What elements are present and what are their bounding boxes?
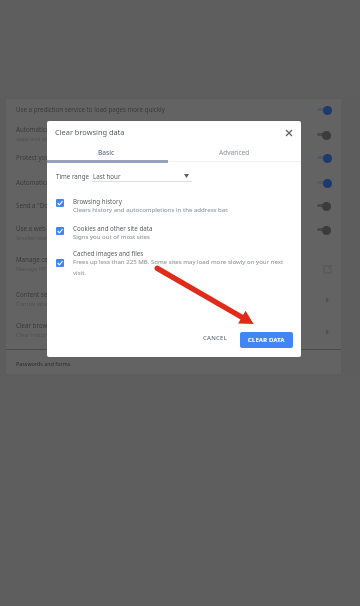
button[interactable]: CANCEL [199,329,231,347]
staticText: Automatically send some system informati… [16,125,208,133]
staticText: Basic [98,148,115,157]
staticText: Advanced [219,148,250,157]
staticText: Last hour [93,172,121,180]
staticText: Manage HTTPS/SSL certificates and settin… [16,265,131,273]
staticText: Send a "Do Not Track" request with your … [16,201,180,209]
staticText: Frees up less than 225 MB. Some sites ma… [73,257,284,265]
staticText: Content settings [16,290,64,298]
staticText: Use a web service to help resolve naviga… [16,224,164,232]
button[interactable]: Basic [47,143,174,161]
button[interactable]: Close dialog [281,125,297,141]
button[interactable]: Open certificate manager [321,262,335,276]
staticText: Browsing history [73,197,122,205]
staticText: Cookies and other site data [73,224,153,232]
button[interactable]: Toggle setting [322,131,331,140]
staticText: Clear browsing data [55,127,125,137]
button[interactable]: Toggle setting [323,106,332,115]
staticText: CLEAR DATA [248,336,285,344]
button[interactable]: Toggle setting [323,179,332,188]
button[interactable]: Toggle setting [322,202,331,211]
button[interactable] [47,193,301,219]
staticText: Automatically detect useful content on p… [16,178,148,186]
staticText: visit. [73,268,86,276]
staticText: Clear history, cookies, site data, and c… [16,331,127,339]
staticText: CANCEL [203,334,228,342]
button[interactable]: CLEAR DATA [240,332,293,348]
button[interactable]: Toggle setting [323,154,332,163]
button[interactable]: Advanced [174,143,301,161]
staticText: Manage certificates [16,255,73,263]
button[interactable] [47,220,301,246]
staticText: Passwords and forms [16,360,71,367]
staticText: Use a prediction service to load pages m… [16,105,165,113]
staticText: apps and sites [16,135,54,143]
staticText: Cached images and files [73,249,144,257]
staticText: Clear browsing data [16,321,75,329]
button[interactable]: Toggle setting [322,226,331,235]
staticText: Control what information websites can us… [16,300,129,308]
staticText: Clears history and autocompletions in th… [73,205,229,213]
staticText: Protect you and your device from dangero… [16,153,161,161]
button[interactable] [47,245,301,279]
staticText: Smaller searches are sent to Google [16,234,111,242]
button[interactable]: Last hour [89,169,193,183]
staticText: Time range [56,172,89,180]
staticText: Signs you out of most sites [73,232,150,240]
